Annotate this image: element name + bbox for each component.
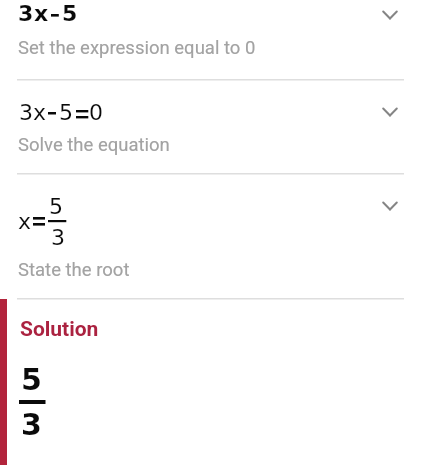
staticText: 5 (49, 194, 63, 220)
staticText: x (18, 209, 32, 235)
staticText: 5 (59, 100, 73, 126)
staticText: 3 (18, 1, 34, 27)
button[interactable]: 3 (0, 0, 421, 80)
button[interactable]: 3 (0, 81, 421, 174)
staticText: State the root (18, 259, 130, 281)
staticText: 3 (51, 225, 65, 251)
staticText: 0 (89, 100, 103, 126)
staticText: 3 (21, 407, 42, 442)
button[interactable]: Expand step 3 (370, 186, 410, 226)
button[interactable]: Expand step 2 (370, 92, 410, 132)
staticText: x (34, 1, 49, 27)
button[interactable]: Expand step 1 (370, 0, 410, 35)
staticText: 5 (21, 362, 42, 397)
staticText: Solve the equation (18, 134, 170, 156)
staticText: 5 (62, 1, 78, 27)
staticText: 3 (19, 100, 33, 126)
staticText: Set the expression equal to 0 (18, 37, 256, 59)
staticText: Solution (20, 317, 99, 342)
staticText: x (33, 100, 47, 126)
button[interactable]: x (0, 175, 421, 299)
